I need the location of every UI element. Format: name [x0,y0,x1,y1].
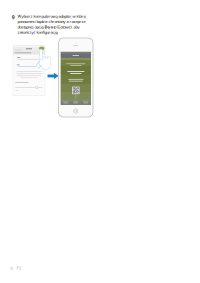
staticText: 9 [12,14,15,21]
staticText: PL [16,265,21,271]
staticText: Wybierz komputerową adapter, w której po… [17,14,86,35]
button[interactable]: Tab [61,100,71,105]
button[interactable]: Done [38,46,45,50]
button[interactable]: Tab [81,100,91,105]
button[interactable]: Tab [71,100,81,105]
staticText: 6 [10,265,12,271]
